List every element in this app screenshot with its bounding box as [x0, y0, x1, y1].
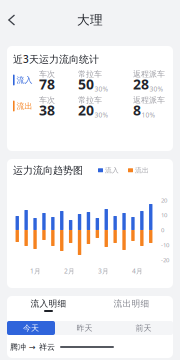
staticText: -20	[161, 256, 169, 264]
staticText: 返程派车	[133, 95, 165, 105]
staticText: 流出	[17, 101, 33, 111]
staticText: 车次	[39, 69, 55, 79]
staticText: 30%	[94, 110, 108, 120]
staticText: 流入	[17, 75, 33, 85]
staticText: 30%	[149, 84, 163, 94]
staticText: 今天	[23, 323, 39, 333]
staticText: 50	[78, 74, 94, 94]
staticText: 常拉车	[78, 69, 102, 79]
staticText: 1月	[30, 266, 41, 276]
staticText: 20	[161, 196, 167, 204]
staticText: 2月	[64, 266, 75, 276]
staticText: 3月	[98, 266, 109, 276]
staticText: 前天	[135, 323, 151, 333]
button[interactable]: 腾冲 → 祥云	[10, 340, 170, 354]
staticText: 常拉车	[78, 95, 102, 105]
staticText: 腾冲 → 祥云	[10, 342, 55, 352]
staticText: 4月	[132, 266, 143, 276]
staticText: 10	[161, 211, 167, 219]
button[interactable]: 前天	[114, 321, 173, 335]
staticText: 返程派车	[133, 69, 165, 79]
staticText: -10	[161, 241, 169, 249]
staticText: 0	[161, 226, 164, 234]
button[interactable]: Back	[0, 8, 23, 31]
staticText: 流出	[135, 166, 149, 174]
staticText: 28	[133, 74, 149, 94]
staticText: 流入明细	[30, 298, 66, 309]
button[interactable]: 流入明细	[7, 299, 90, 318]
staticText: 车次	[39, 95, 55, 105]
button[interactable]: 流出明细	[90, 299, 173, 318]
staticText: 近3天运力流向统计	[13, 52, 99, 66]
staticText: 8	[133, 100, 141, 120]
staticText: 昨天	[76, 323, 92, 333]
button[interactable]: 昨天	[55, 321, 114, 335]
staticText: 38	[39, 100, 55, 120]
button[interactable]: 今天	[7, 321, 55, 335]
staticText: 10%	[141, 110, 155, 120]
staticText: 流出明细	[113, 298, 149, 309]
staticText: 20	[78, 100, 94, 120]
staticText: 运力流向趋势图	[13, 164, 83, 177]
staticText: 大理	[77, 12, 103, 28]
staticText: 流入	[105, 166, 119, 174]
staticText: 30%	[94, 84, 108, 94]
staticText: 78	[39, 74, 55, 94]
